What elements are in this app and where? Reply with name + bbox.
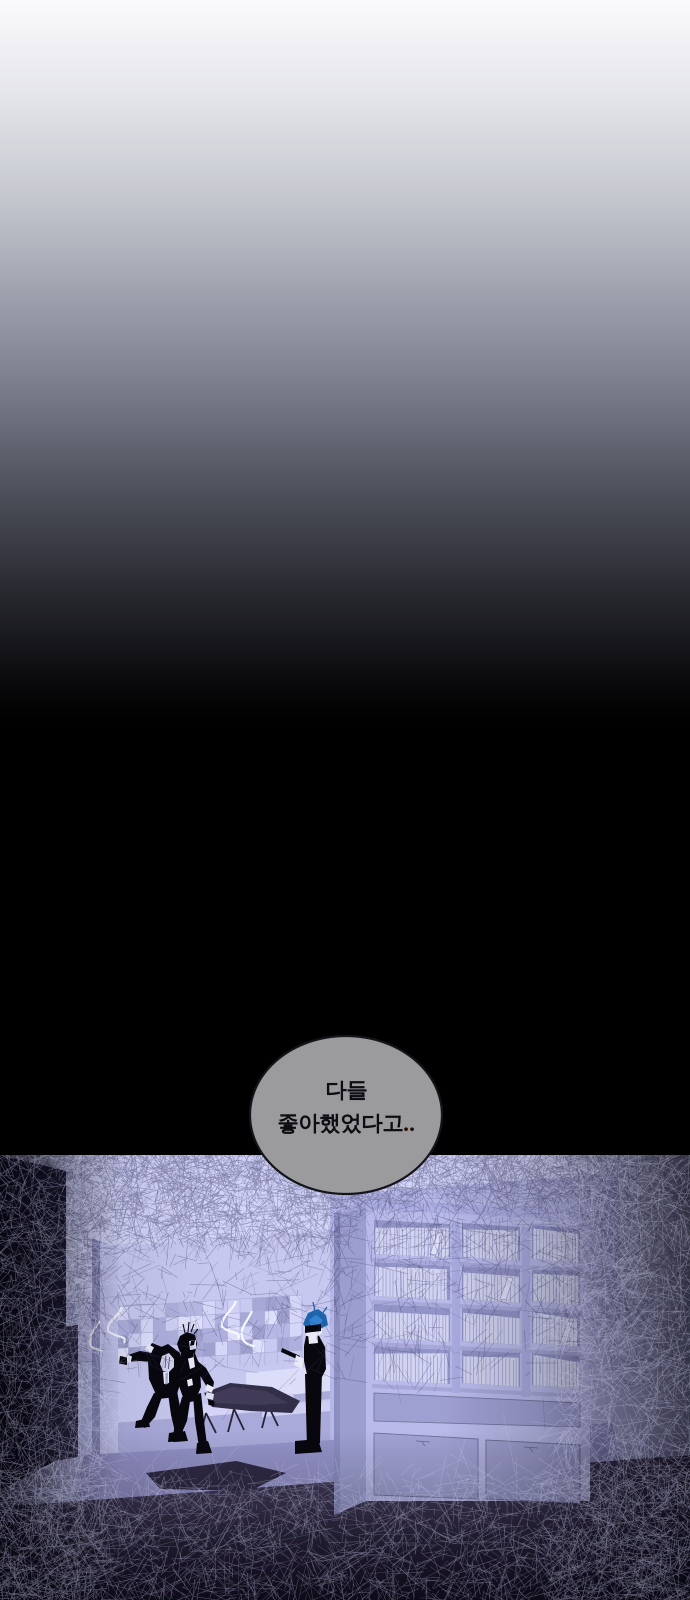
staticText: 좋아했었다고.. [277, 1108, 415, 1137]
staticText: 다들 [325, 1077, 367, 1103]
